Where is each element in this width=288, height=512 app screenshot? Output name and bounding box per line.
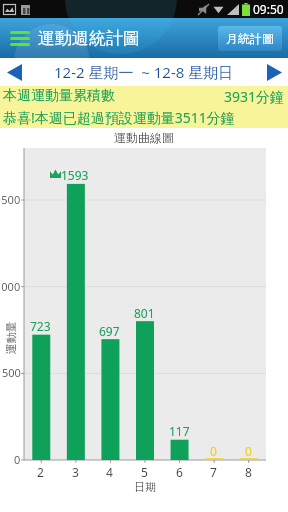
staticText: 日期: [134, 480, 156, 494]
staticText: 697: [99, 323, 120, 339]
staticText: 1000: [0, 279, 21, 294]
staticText: 7: [210, 464, 217, 480]
staticText: 117: [169, 423, 190, 439]
staticText: 2: [37, 464, 44, 480]
staticText: 0: [14, 452, 21, 467]
staticText: 0: [210, 443, 217, 459]
staticText: 6: [176, 464, 183, 480]
staticText: 3931分鐘: [224, 87, 285, 106]
staticText: 運動週統計圖: [38, 28, 140, 49]
staticText: 月統計圖: [226, 31, 274, 46]
staticText: 運動曲線圖: [114, 130, 174, 145]
staticText: 本週運動量累積數: [3, 87, 115, 105]
staticText: 8: [245, 464, 252, 480]
staticText: 09:50: [253, 1, 284, 17]
button[interactable]: Menu: [4, 25, 36, 52]
staticText: 12-2 星期一 ~ 12-8 星期日: [54, 62, 234, 82]
staticText: 0: [245, 443, 252, 459]
staticText: 723: [30, 318, 51, 334]
staticText: 3: [72, 464, 79, 480]
staticText: 恭喜!本週已超過預設運動量3511分鐘: [3, 108, 235, 127]
button[interactable]: Next week: [260, 58, 288, 86]
button[interactable]: Previous week: [0, 58, 28, 86]
staticText: 801: [134, 305, 155, 321]
staticText: 運動量: [3, 321, 17, 354]
button[interactable]: 月統計圖: [218, 26, 282, 51]
staticText: 500: [2, 365, 21, 380]
staticText: 1500: [0, 192, 21, 207]
staticText: 5: [141, 464, 148, 480]
staticText: 1593: [61, 167, 89, 183]
staticText: 4: [106, 464, 113, 480]
